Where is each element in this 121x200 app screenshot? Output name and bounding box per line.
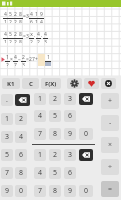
staticText: 8: [19, 168, 24, 178]
staticText: 4: [40, 19, 43, 23]
staticText: =: [23, 33, 26, 40]
button[interactable]: 4: [34, 167, 46, 179]
staticText: −: [18, 56, 21, 63]
staticText: +: [35, 56, 38, 63]
button[interactable]: 9: [1, 185, 13, 197]
staticText: 8: [19, 11, 22, 18]
button[interactable]: 2: [49, 149, 61, 161]
button[interactable]: 7: [34, 128, 46, 140]
button[interactable]: .: [1, 94, 13, 106]
button[interactable]: 4: [34, 110, 46, 122]
staticText: 0: [84, 129, 89, 139]
button[interactable]: 7: [1, 167, 13, 179]
button[interactable]: 2: [15, 113, 27, 125]
staticText: ×: [10, 56, 13, 63]
staticText: 4: [14, 54, 17, 61]
staticText: 2: [14, 19, 17, 23]
button[interactable]: 3: [64, 149, 76, 161]
staticText: 8: [19, 31, 22, 38]
button[interactable]: K1: [2, 78, 20, 89]
button[interactable]: +: [101, 93, 119, 109]
staticText: 4: [38, 168, 43, 178]
staticText: -: [109, 118, 112, 128]
staticText: 4: [4, 31, 7, 38]
button[interactable]: ×: [101, 137, 119, 153]
staticText: =: [26, 56, 29, 63]
staticText: 5: [53, 168, 58, 178]
button[interactable]: 3: [64, 93, 76, 105]
staticText: 1: [4, 39, 7, 43]
staticText: ·: [34, 33, 36, 40]
button[interactable]: 4: [15, 131, 27, 143]
button[interactable]: 9: [64, 128, 76, 140]
staticText: 2: [14, 11, 17, 18]
staticText: 2: [53, 150, 58, 160]
staticText: ·: [41, 33, 43, 40]
staticText: 1: [38, 94, 43, 104]
staticText: 2: [19, 114, 24, 124]
button[interactable]: 7: [34, 185, 46, 197]
staticText: 0: [19, 186, 24, 196]
staticText: =: [23, 13, 26, 20]
staticText: 7: [5, 168, 10, 178]
button[interactable]: Backspace: [15, 94, 30, 106]
staticText: 1: [35, 11, 38, 18]
staticText: 1: [35, 19, 38, 23]
button[interactable]: =: [101, 181, 119, 197]
button[interactable]: Settings: [67, 78, 82, 89]
button[interactable]: 5: [1, 149, 13, 161]
staticText: 2: [37, 39, 40, 43]
staticText: ×: [108, 140, 113, 150]
button[interactable]: F(X): [41, 78, 61, 89]
button[interactable]: 8: [49, 128, 61, 140]
staticText: 3: [68, 150, 73, 160]
staticText: 6: [68, 111, 73, 121]
button[interactable]: 0: [15, 185, 27, 197]
button[interactable]: Favorite: [84, 78, 99, 89]
staticText: 5: [53, 111, 58, 121]
staticText: 6: [19, 150, 24, 160]
button[interactable]: Backspace: [79, 93, 93, 105]
staticText: 2: [53, 94, 58, 104]
button[interactable]: 1: [34, 149, 46, 161]
button[interactable]: 1: [34, 93, 46, 105]
button[interactable]: 2: [49, 93, 61, 105]
staticText: K1: [7, 80, 15, 88]
button[interactable]: 9: [64, 185, 76, 197]
staticText: 5: [9, 31, 12, 38]
staticText: 4: [4, 11, 7, 18]
staticText: 3: [26, 13, 29, 20]
button[interactable]: 0: [79, 128, 93, 140]
staticText: 5: [5, 150, 10, 160]
staticText: 3: [26, 33, 29, 40]
staticText: 1: [5, 114, 10, 124]
button[interactable]: -: [101, 115, 119, 131]
button[interactable]: 1: [1, 113, 13, 125]
button[interactable]: 5: [49, 167, 61, 179]
button[interactable]: 0: [79, 185, 93, 197]
button[interactable]: ÷: [101, 159, 119, 175]
staticText: 9: [68, 186, 73, 196]
staticText: 7: [32, 56, 35, 63]
staticText: 3: [22, 62, 25, 66]
button[interactable]: 3: [1, 131, 13, 143]
staticText: 9: [5, 186, 10, 196]
staticText: 2: [9, 19, 12, 23]
staticText: 1: [6, 54, 9, 61]
button[interactable]: 6: [15, 149, 27, 161]
staticText: 4: [37, 31, 40, 38]
staticText: 8: [19, 19, 22, 23]
button[interactable]: 8: [15, 167, 27, 179]
staticText: =: [108, 184, 113, 194]
button[interactable]: 6: [64, 110, 76, 122]
button[interactable]: C: [22, 78, 39, 89]
button[interactable]: Backspace: [79, 149, 93, 161]
staticText: 2: [14, 39, 17, 43]
staticText: 7: [14, 62, 17, 66]
button[interactable]: 6: [64, 167, 76, 179]
staticText: 2: [22, 54, 25, 61]
button[interactable]: 8: [49, 185, 61, 197]
button[interactable]: Close: [101, 78, 116, 89]
staticText: 8: [53, 129, 58, 139]
button[interactable]: 5: [49, 110, 61, 122]
